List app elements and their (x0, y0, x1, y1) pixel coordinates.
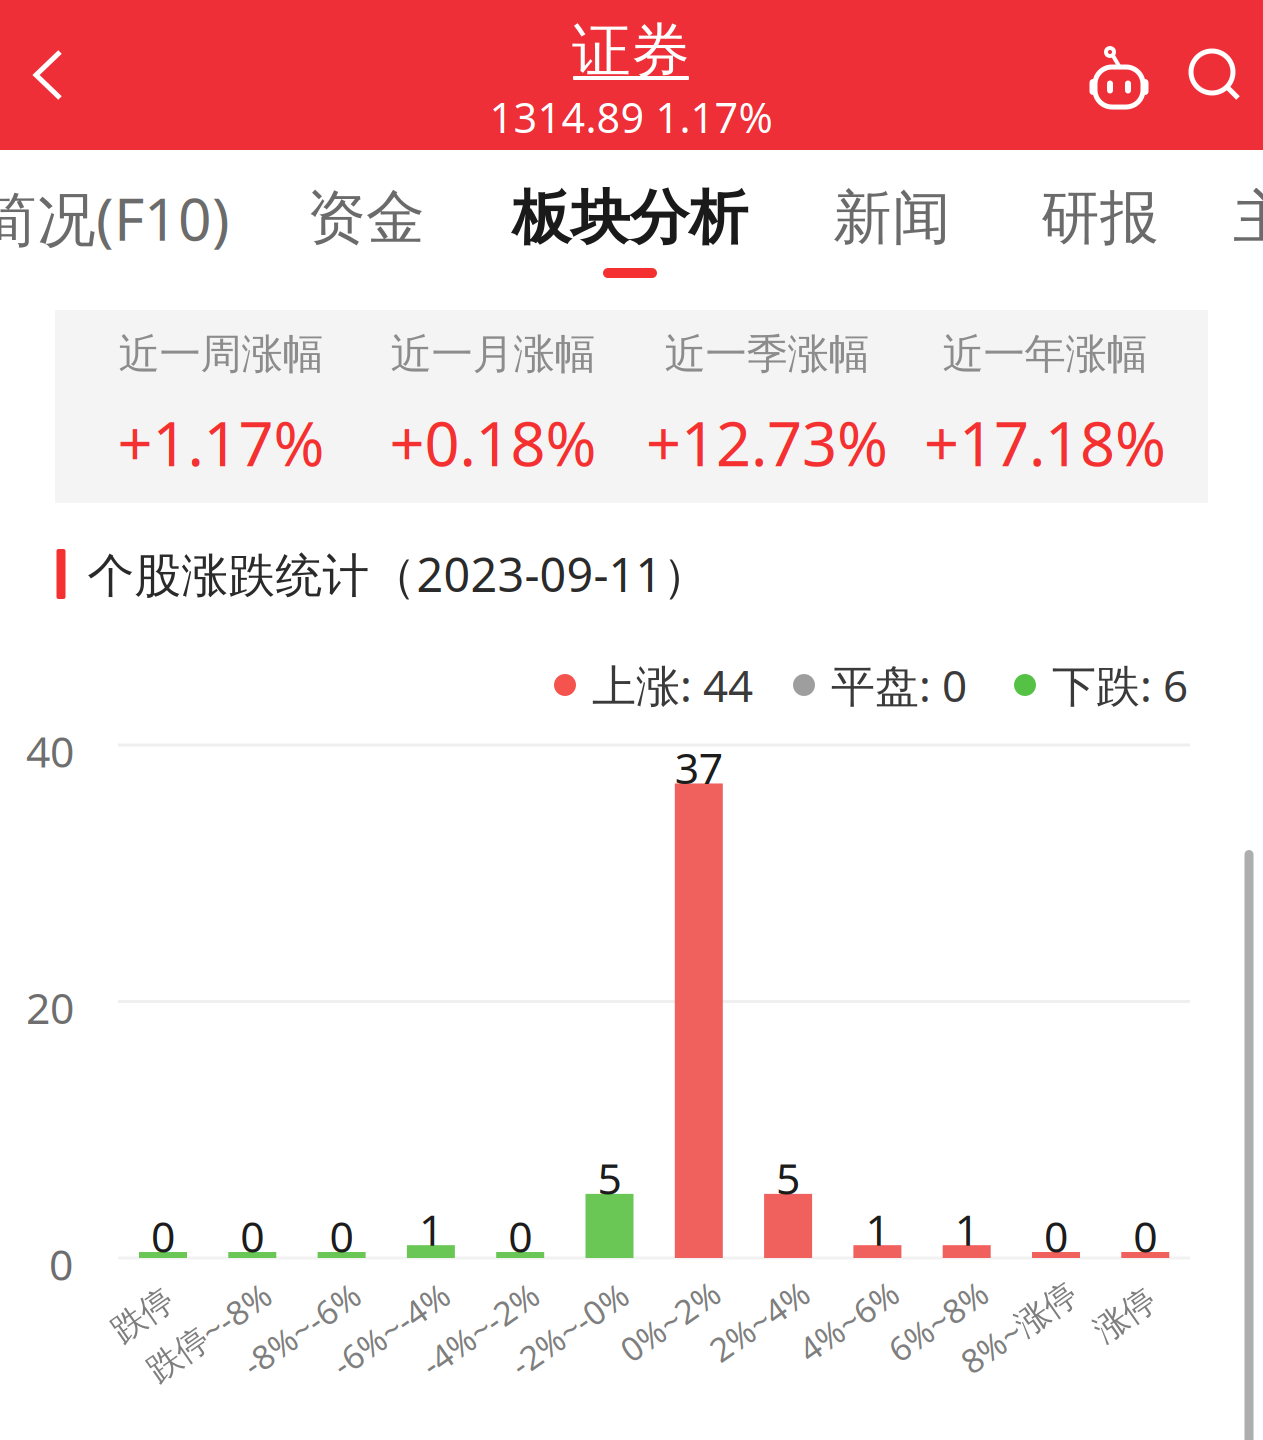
button[interactable]: 资金 (293, 172, 439, 288)
staticText: 板块分析 (512, 182, 748, 254)
staticText: 近一月涨幅 (390, 329, 595, 380)
staticText: 下跌: 6 (1052, 656, 1188, 714)
staticText: 近一周涨幅 (118, 329, 323, 380)
button[interactable]: 新闻 (819, 172, 965, 288)
staticText: 近一年涨幅 (942, 329, 1147, 380)
staticText: 2%~4% (703, 1299, 816, 1343)
staticText: 4%~6% (792, 1299, 905, 1343)
button[interactable]: 简况(F10) (0, 169, 244, 291)
staticText: 5 (597, 1149, 621, 1206)
staticText: 简况(F10) (0, 179, 230, 257)
staticText: 0 (1133, 1208, 1157, 1264)
staticText: -6%~-4% (323, 1307, 458, 1351)
staticText: 研报 (1041, 182, 1159, 254)
button[interactable]: 研报 (1027, 172, 1173, 288)
staticText: 37 (675, 739, 723, 796)
staticText: +12.73% (646, 402, 888, 483)
staticText: 资金 (307, 182, 425, 254)
staticText: -4%~-2% (413, 1307, 548, 1351)
staticText: 平盘: 0 (831, 656, 967, 714)
button[interactable]: 板块分析 (498, 172, 762, 288)
staticText: 0 (49, 1236, 73, 1292)
button[interactable]: Search (1167, 0, 1263, 150)
staticText: +0.18% (389, 402, 596, 483)
staticText: 1 (865, 1201, 889, 1257)
staticText: 证券 (572, 15, 690, 87)
button[interactable]: Back (0, 0, 96, 150)
staticText: 0 (508, 1208, 532, 1264)
button[interactable]: 主板 (1219, 172, 1263, 288)
staticText: 1314.89 1.17% (489, 90, 772, 144)
staticText: +17.18% (924, 402, 1166, 483)
staticText: 个股涨跌统计（2023-09-11） (87, 543, 709, 605)
staticText: 跌停 (109, 1295, 175, 1336)
staticText: 0 (1044, 1208, 1068, 1264)
staticText: -8%~-6% (234, 1307, 369, 1351)
staticText: 主板 (1233, 182, 1263, 254)
staticText: 0 (151, 1208, 175, 1264)
staticText: 0%~2% (614, 1299, 727, 1343)
staticText: 0 (330, 1208, 354, 1264)
staticText: 5 (776, 1149, 800, 1206)
staticText: +1.17% (117, 402, 324, 483)
staticText: 上涨: 44 (592, 656, 753, 714)
staticText: 8%~涨停 (952, 1305, 1084, 1350)
staticText: 6%~8% (881, 1299, 994, 1343)
staticText: 涨停 (1092, 1295, 1158, 1336)
staticText: 1 (419, 1201, 443, 1257)
staticText: 40 (26, 723, 74, 779)
staticText: 近一季涨幅 (664, 329, 869, 380)
staticText: -2%~-0% (502, 1307, 637, 1351)
staticText: 新闻 (833, 182, 951, 254)
staticText: 1 (955, 1201, 979, 1257)
button[interactable]: AI assistant (1071, 0, 1167, 150)
staticText: 0 (240, 1208, 264, 1264)
staticText: 20 (26, 979, 74, 1036)
staticText: 跌停~-8% (137, 1309, 280, 1354)
